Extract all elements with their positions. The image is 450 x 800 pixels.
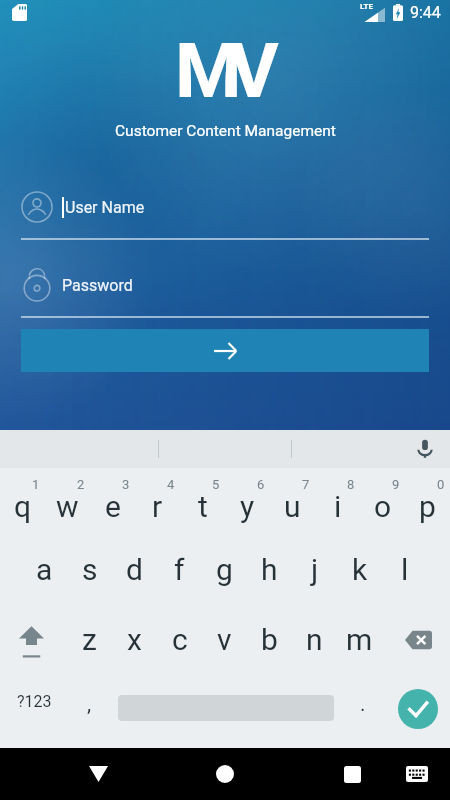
button[interactable]: f [157,538,202,608]
staticText: k [352,552,368,587]
button[interactable]: 8 [315,468,360,538]
button[interactable]: Home [204,748,246,800]
staticText: 3 [122,477,130,492]
button[interactable]: Voice input [414,438,436,460]
staticText: p [419,489,436,524]
staticText: n [306,622,323,657]
button[interactable]: Backspace [382,608,450,678]
staticText: z [82,622,97,657]
staticText: 7 [302,477,310,492]
button[interactable]: 1 [0,468,45,538]
staticText: r [152,489,163,524]
staticText: ?123 [17,692,52,711]
button[interactable]: 4 [135,468,180,538]
staticText: o [374,489,392,524]
staticText: Password [62,276,133,295]
staticText: v [217,622,232,657]
button[interactable]: 2 [45,468,90,538]
staticText: q [14,489,32,524]
button[interactable]: Sign in [21,329,429,372]
button[interactable]: 7 [270,468,315,538]
staticText: 6 [257,477,265,492]
staticText: g [216,552,233,587]
button[interactable]: z [67,608,112,678]
staticText: LTE [360,2,373,11]
staticText: c [172,622,188,657]
staticText: 2 [77,477,85,492]
staticText: t [198,489,208,524]
button[interactable]: 0 [405,468,450,538]
button[interactable]: Shift [0,608,67,678]
staticText: e [105,489,121,524]
staticText: . [360,692,366,717]
button[interactable]: n [292,608,337,678]
button[interactable]: b [247,608,292,678]
staticText: u [284,489,301,524]
button[interactable]: Keyboard [396,748,438,800]
staticText: j [311,552,319,587]
button[interactable]: 5 [180,468,225,538]
staticText: 8 [347,477,355,492]
button[interactable]: m [337,608,382,678]
button[interactable]: x [112,608,157,678]
button[interactable]: a [22,538,67,608]
staticText: h [261,552,278,587]
button[interactable]: Enter [398,689,438,729]
button[interactable]: . [340,678,386,748]
staticText: 1 [32,477,40,492]
staticText: w [56,489,79,524]
button[interactable]: d [112,538,157,608]
staticText: MV [175,26,267,115]
staticText: a [36,552,53,587]
button[interactable]: 3 [90,468,135,538]
staticText: Customer Content Management [115,122,336,140]
staticText: 9:44 [410,3,441,22]
staticText: 0 [437,477,445,492]
button[interactable]: v [202,608,247,678]
staticText: y [240,489,255,524]
button[interactable]: k [337,538,382,608]
button[interactable]: g [202,538,247,608]
staticText: d [126,552,143,587]
button[interactable]: 9 [360,468,405,538]
button[interactable]: s [67,538,112,608]
staticText: l [401,552,409,587]
button[interactable]: Recents [331,748,373,800]
button[interactable]: 6 [225,468,270,538]
button[interactable]: j [292,538,337,608]
staticText: m [346,622,373,657]
button[interactable]: l [382,538,427,608]
button[interactable]: c [157,608,202,678]
staticText: 9 [392,477,400,492]
staticText: , [87,692,92,717]
staticText: i [334,489,342,524]
button[interactable]: , [66,678,112,748]
button[interactable]: h [247,538,292,608]
staticText: f [174,552,185,587]
button[interactable]: Back [77,748,119,800]
button[interactable]: Space [118,678,334,748]
staticText: x [127,622,142,657]
staticText: s [82,552,98,587]
staticText: 5 [212,477,220,492]
staticText: b [261,622,278,657]
staticText: 4 [167,477,175,492]
staticText: User Name [65,198,145,217]
button[interactable]: ?123 [0,678,66,748]
